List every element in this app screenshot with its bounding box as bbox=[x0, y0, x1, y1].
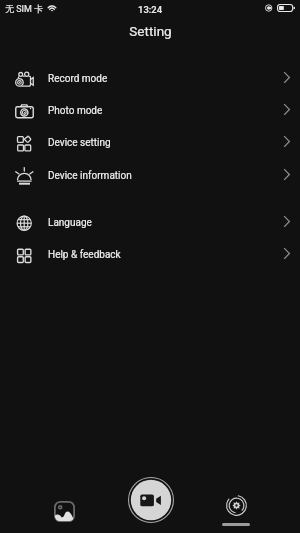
button[interactable]: Language bbox=[0, 207, 300, 239]
button[interactable]: Record bbox=[128, 477, 174, 523]
button[interactable]: Device setting bbox=[0, 127, 300, 159]
staticText: Device setting bbox=[48, 137, 111, 149]
staticText: Photo mode bbox=[48, 105, 103, 117]
staticText: 无 SIM 卡 bbox=[5, 3, 44, 14]
staticText: 13:24 bbox=[138, 4, 163, 15]
staticText: Setting bbox=[129, 23, 172, 39]
button[interactable]: Record mode bbox=[0, 63, 300, 95]
button[interactable]: Device information bbox=[0, 160, 300, 192]
button[interactable]: Gallery bbox=[34, 481, 94, 527]
button[interactable]: Help & feedback bbox=[0, 239, 300, 271]
staticText: Device information bbox=[48, 170, 132, 182]
button[interactable]: Photo mode bbox=[0, 95, 300, 127]
staticText: Language bbox=[48, 217, 92, 229]
staticText: Record mode bbox=[48, 73, 108, 85]
button[interactable]: Settings bbox=[206, 481, 266, 527]
staticText: Help & feedback bbox=[48, 249, 121, 261]
